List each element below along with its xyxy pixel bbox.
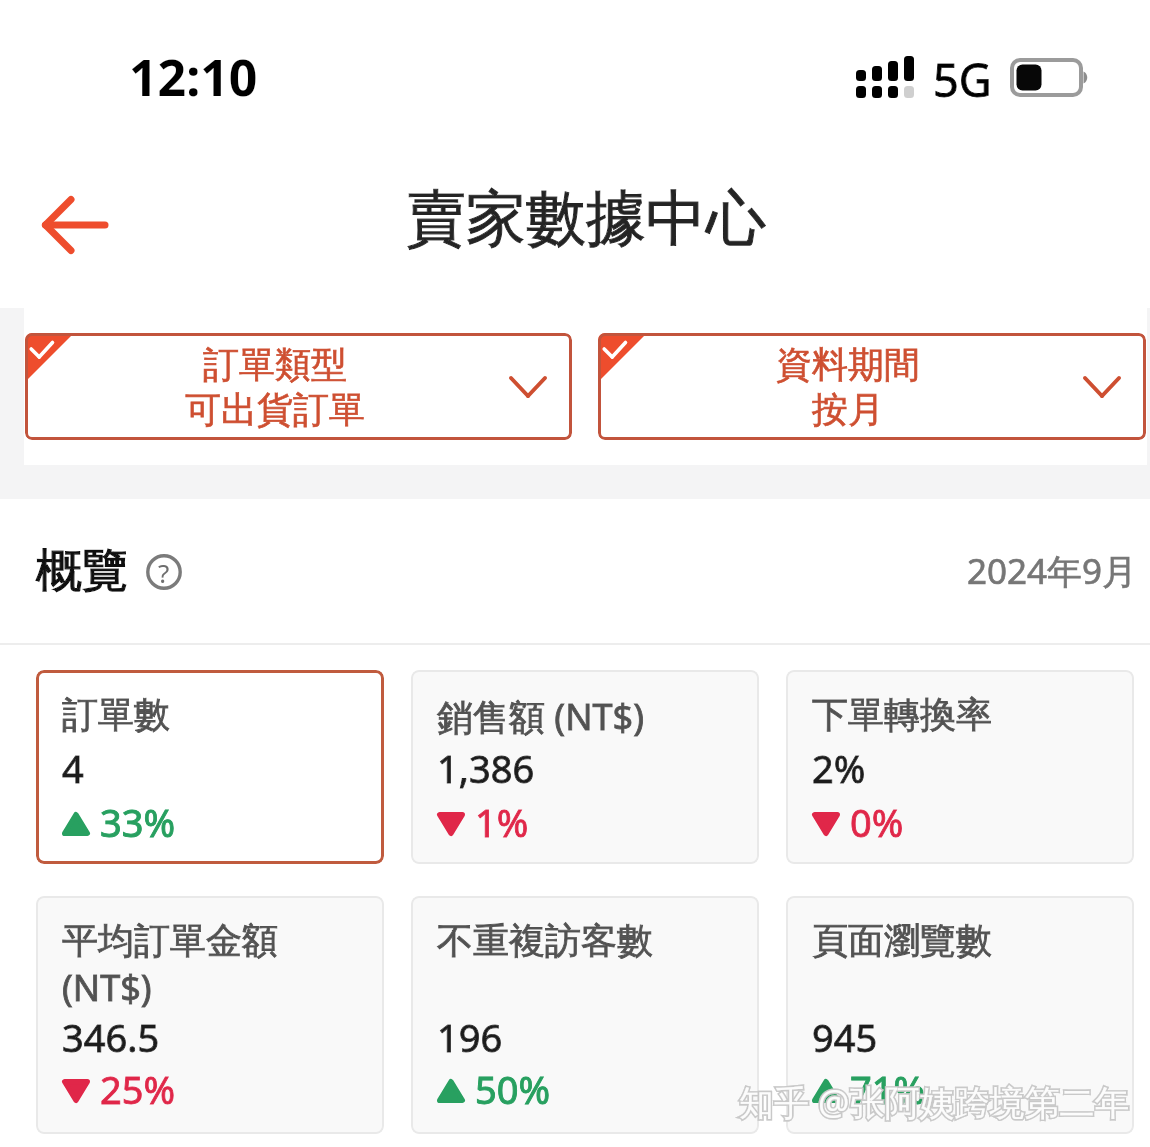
staticText: 訂單類型 — [203, 342, 347, 387]
staticText: 訂單類型 — [203, 342, 347, 387]
button[interactable]: 平均訂單金額 — [36, 896, 384, 1134]
staticText: 945 — [812, 1011, 878, 1063]
staticText: 知乎 @张阿姨跨境第二年 — [739, 1078, 1130, 1126]
staticText: 頁面瀏覽數 — [812, 918, 992, 963]
staticText: ? — [158, 555, 170, 590]
staticText: 概覽 — [36, 542, 128, 600]
button[interactable]: 訂單數 — [36, 670, 384, 864]
staticText: 33% — [100, 796, 176, 848]
staticText: 下單轉換率 — [812, 692, 992, 737]
staticText: 346.5 — [62, 1011, 160, 1063]
staticText: 不重複訪客數 — [437, 918, 653, 963]
button[interactable]: 不重複訪客數 — [411, 896, 759, 1134]
button[interactable]: 資料期間 — [598, 333, 1146, 440]
staticText: 33% — [100, 796, 176, 848]
staticText: 50% — [475, 1063, 551, 1115]
staticText: 25% — [100, 1063, 176, 1115]
staticText: 賣家數據中心 — [406, 181, 766, 257]
staticText: 訂單數 — [62, 692, 170, 737]
staticText: 資料期間 — [776, 342, 920, 387]
staticText: 可出貨訂單 — [185, 387, 365, 432]
staticText: 2% — [812, 742, 866, 794]
staticText: 5G — [933, 49, 992, 110]
button[interactable]: Back — [18, 170, 130, 280]
staticText: 346.5 — [62, 1011, 160, 1063]
staticText: 0% — [850, 796, 904, 848]
button[interactable]: 訂單類型 — [25, 333, 572, 440]
staticText: 71% — [850, 1063, 926, 1115]
staticText: 1,386 — [437, 742, 535, 794]
staticText: 5G — [933, 49, 992, 110]
staticText: 知乎 @张阿姨跨境第二年 — [739, 1078, 1130, 1126]
staticText: (NT$) — [62, 963, 152, 1012]
staticText: 196 — [437, 1011, 503, 1063]
staticText: 50% — [475, 1063, 551, 1115]
staticText: 12:10 — [129, 43, 258, 111]
staticText: 平均訂單金額 — [62, 918, 278, 963]
staticText: 0% — [850, 796, 904, 848]
staticText: 2024年9月 — [967, 547, 1138, 595]
staticText: 銷售額 (NT$) — [437, 692, 644, 741]
staticText: 賣家數據中心 — [406, 181, 766, 257]
button[interactable]: 銷售額 (NT$) — [411, 670, 759, 864]
staticText: 4 — [62, 742, 84, 794]
button[interactable]: 頁面瀏覽數 — [786, 896, 1134, 1134]
staticText: 可出貨訂單 — [185, 387, 365, 432]
staticText: 概覽 — [36, 542, 128, 600]
staticText: 資料期間 — [776, 342, 920, 387]
staticText: 1% — [475, 796, 529, 848]
staticText: 2% — [812, 742, 866, 794]
staticText: 銷售額 (NT$) — [437, 692, 644, 741]
staticText: 按月 — [812, 387, 884, 432]
staticText: 不重複訪客數 — [437, 918, 653, 963]
staticText: 按月 — [812, 387, 884, 432]
staticText: (NT$) — [62, 963, 152, 1012]
staticText: 下單轉換率 — [812, 692, 992, 737]
button[interactable]: Help — [143, 551, 185, 593]
staticText: 71% — [850, 1063, 926, 1115]
staticText: 25% — [100, 1063, 176, 1115]
button[interactable]: 下單轉換率 — [786, 670, 1134, 864]
staticText: 1% — [475, 796, 529, 848]
staticText: 4 — [62, 742, 84, 794]
staticText: 訂單數 — [62, 692, 170, 737]
staticText: 196 — [437, 1011, 503, 1063]
staticText: 1,386 — [437, 742, 535, 794]
staticText: 平均訂單金額 — [62, 918, 278, 963]
staticText: 945 — [812, 1011, 878, 1063]
staticText: 2024年9月 — [967, 547, 1138, 595]
staticText: 頁面瀏覽數 — [812, 918, 992, 963]
